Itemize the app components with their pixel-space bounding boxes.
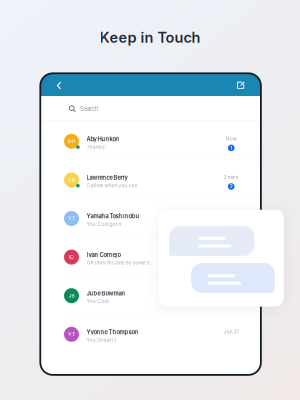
- staticText: Yamaha Toshinobu: [86, 213, 139, 220]
- staticText: 1: [230, 145, 232, 151]
- staticText: You: Cool got it: [86, 221, 121, 227]
- staticText: Ivan Cornejo: [86, 251, 120, 258]
- staticText: 2: [230, 184, 233, 189]
- staticText: LB: [68, 177, 74, 183]
- staticText: 2 mins: [224, 174, 239, 180]
- staticText: Aby Hunkon: [86, 136, 119, 142]
- staticText: Jun 21: [224, 329, 239, 335]
- staticText: AH: [67, 138, 75, 144]
- staticText: Yvonne Thompson: [86, 329, 138, 335]
- staticText: Jube Bowman: [86, 290, 125, 297]
- button[interactable]: New message: [233, 76, 249, 94]
- button[interactable]: Search: [40, 96, 261, 122]
- staticText: You: Great! :): [86, 337, 116, 343]
- button[interactable]: JB: [40, 276, 261, 315]
- staticText: You: Cool: [86, 298, 108, 304]
- button[interactable]: IC: [40, 237, 261, 276]
- staticText: Thanks!: [86, 144, 105, 150]
- staticText: JB: [68, 293, 74, 299]
- button[interactable]: AH: [40, 122, 261, 160]
- staticText: YT: [68, 331, 75, 337]
- staticText: YT: [68, 215, 75, 221]
- staticText: Call me when you can: [86, 182, 137, 188]
- button[interactable]: Back: [51, 76, 67, 94]
- button[interactable]: YT: [40, 315, 261, 353]
- staticText: Keep in Touch: [99, 29, 200, 46]
- staticText: OK then I'll come by some ti…: [86, 260, 153, 266]
- staticText: Lawrence Berry: [86, 174, 127, 181]
- button[interactable]: YT: [40, 199, 261, 237]
- staticText: Now: [226, 136, 237, 142]
- staticText: IC: [69, 254, 74, 260]
- button[interactable]: LB: [40, 160, 261, 199]
- staticText: Search: [80, 105, 98, 112]
